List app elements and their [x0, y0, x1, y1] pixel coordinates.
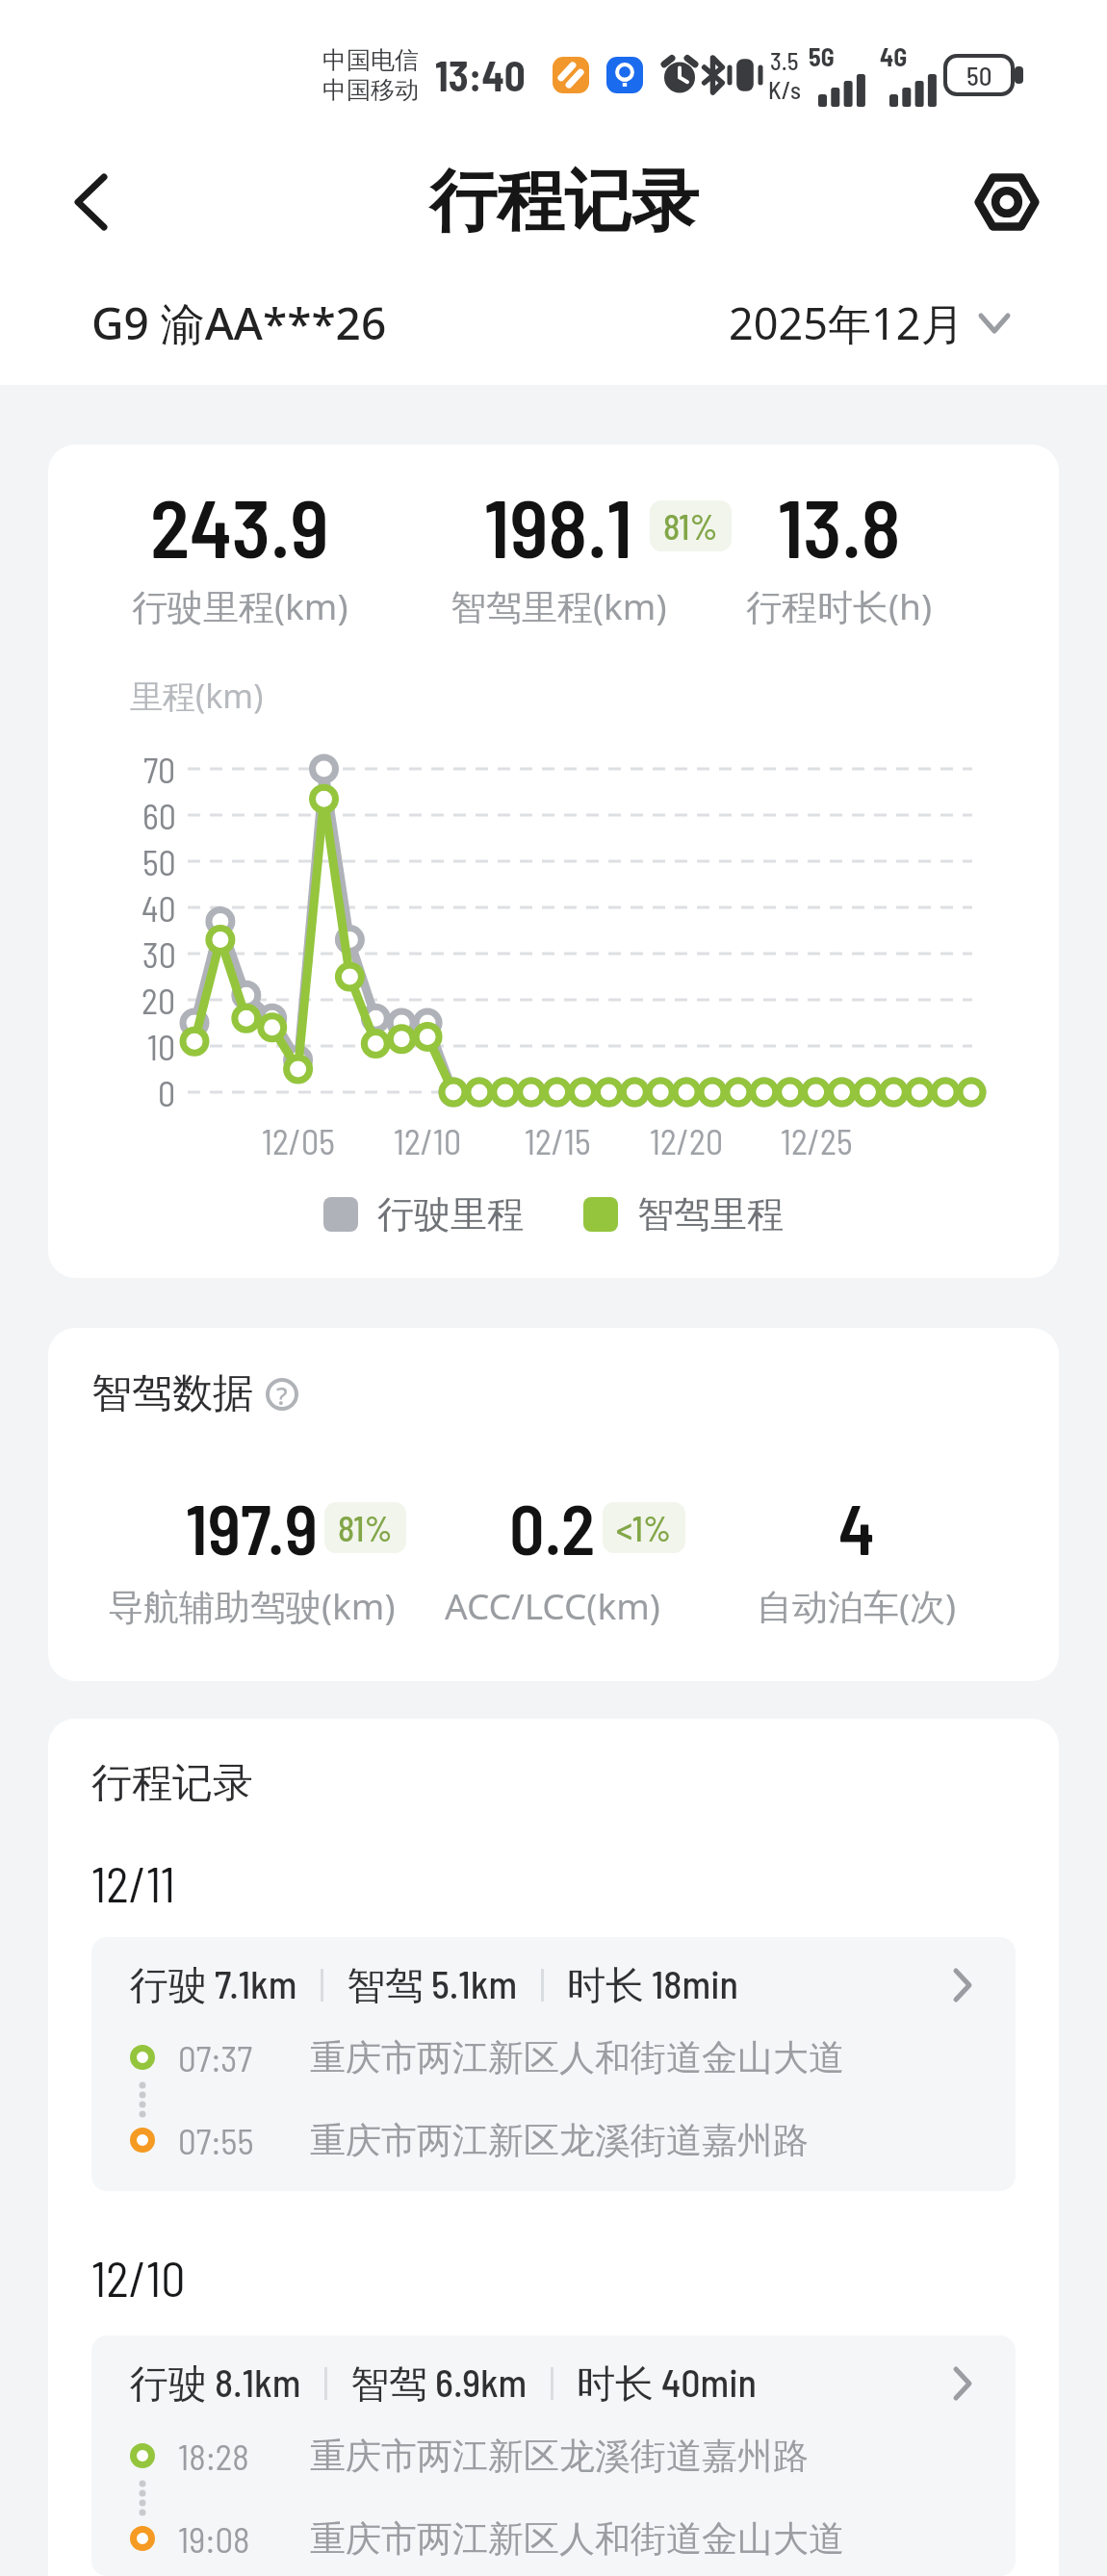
staticText: 智驾数据 [91, 1368, 253, 1419]
staticText: ACC/LCC(km) [445, 1581, 660, 1629]
staticText: 5G [809, 41, 835, 71]
staticText: 行驶 7.1km [130, 1960, 297, 2010]
staticText: 12/10 [91, 2249, 186, 2307]
staticText: 行驶里程 [377, 1191, 524, 1237]
staticText: 197.9 [186, 1486, 318, 1569]
staticText: 70 [143, 749, 176, 790]
staticText: 里程(km) [130, 674, 264, 718]
staticText: 81% [663, 505, 718, 547]
staticText: 4G [880, 41, 908, 71]
staticText: 81% [338, 1507, 393, 1548]
staticText: 行驶 8.1km [130, 2359, 301, 2409]
staticText: 50 [142, 841, 176, 882]
staticText: 重庆市两江新区人和街道金山大道 [310, 2516, 844, 2562]
staticText: 30 [142, 933, 176, 975]
staticText: 07:55 [178, 2119, 254, 2161]
staticText: 中国电信 [322, 45, 419, 75]
staticText: 行程记录 [91, 1758, 253, 1809]
staticText: 07:37 [178, 2036, 252, 2079]
button[interactable] [966, 162, 1047, 242]
staticText: 12/20 [650, 1120, 724, 1161]
staticText: 行驶里程(km) [132, 581, 348, 630]
staticText: ? [276, 1378, 288, 1412]
staticText: 13:40 [435, 50, 526, 100]
staticText: 4 [838, 1486, 875, 1569]
staticText: 50 [966, 60, 992, 90]
staticText: 重庆市两江新区龙溪街道嘉州路 [310, 2434, 809, 2479]
staticText: 12/25 [781, 1120, 853, 1161]
button[interactable]: 行驶 8.1km [91, 2335, 1016, 2576]
staticText: 40 [142, 887, 176, 929]
staticText: 智驾里程 [637, 1191, 784, 1237]
staticText: 10 [147, 1026, 176, 1067]
staticText: 0 [158, 1072, 176, 1113]
staticText: 行程记录 [429, 160, 699, 244]
staticText: 12/15 [525, 1120, 591, 1161]
staticText: 198.1 [484, 477, 632, 574]
staticText: 12/05 [262, 1120, 335, 1161]
staticText: 重庆市两江新区龙溪街道嘉州路 [310, 2118, 809, 2163]
staticText: 19:08 [178, 2517, 250, 2560]
staticText: 行程时长(h) [746, 581, 933, 630]
staticText: 导航辅助驾驶(km) [108, 1581, 396, 1630]
staticText: 时长 40min [577, 2359, 757, 2409]
button[interactable] [52, 164, 129, 241]
staticText: G9 渝AA***26 [91, 293, 387, 353]
staticText: 中国移动 [322, 75, 419, 105]
staticText: 智驾 6.9km [350, 2359, 528, 2409]
staticText: 20 [142, 980, 176, 1021]
staticText: 智驾 5.1km [347, 1960, 518, 2010]
staticText: 60 [142, 795, 176, 836]
staticText: 3.5 [770, 46, 799, 75]
staticText: 12/11 [91, 1854, 175, 1912]
staticText: 12/10 [394, 1120, 462, 1161]
staticText: 0.2 [509, 1486, 596, 1569]
staticText: 2025年12月 [729, 293, 965, 352]
button[interactable]: 行驶 7.1km [91, 1937, 1016, 2191]
staticText: <1% [616, 1507, 672, 1548]
staticText: 自动泊车(次) [757, 1581, 957, 1630]
staticText: K/s [768, 75, 801, 104]
staticText: 18:28 [178, 2435, 249, 2477]
button[interactable]: 2025年12月 [729, 293, 1011, 352]
staticText: 243.9 [150, 477, 329, 574]
staticText: 智驾里程(km) [451, 581, 667, 630]
staticText: 13.8 [778, 477, 901, 574]
staticText: 时长 18min [567, 1960, 738, 2010]
staticText: 重庆市两江新区人和街道金山大道 [310, 2035, 844, 2080]
